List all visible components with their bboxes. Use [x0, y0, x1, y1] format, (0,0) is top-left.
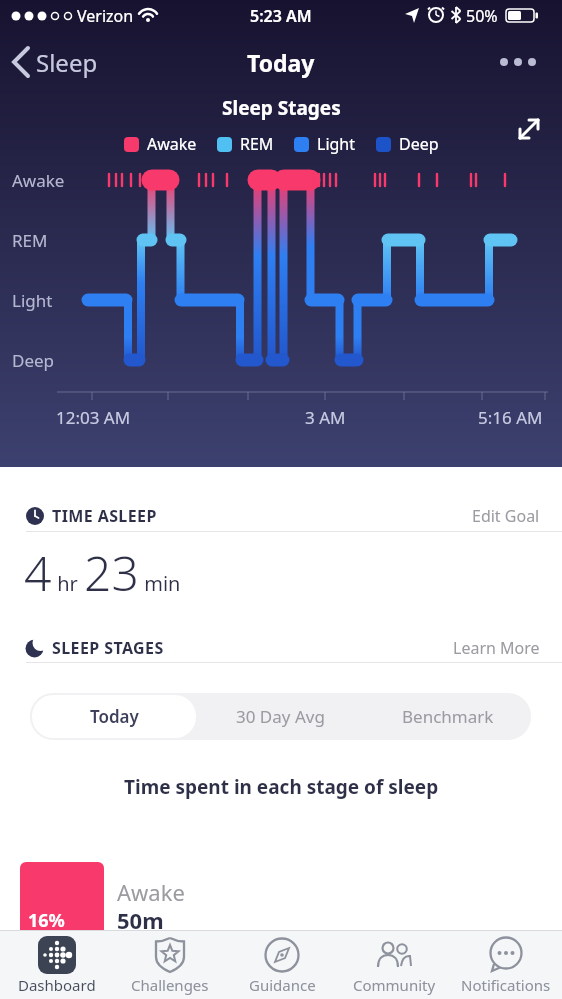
staticText: 5:23 AM — [250, 5, 312, 27]
staticText: Today — [90, 705, 139, 728]
staticText: REM — [12, 229, 48, 252]
staticText: Sleep Stages — [222, 95, 341, 121]
staticText: Guidance — [249, 975, 316, 995]
staticText: Verizon — [77, 5, 134, 27]
staticText: Light — [317, 133, 356, 155]
staticText: 3 AM — [305, 406, 346, 429]
staticText: Deep — [399, 133, 439, 155]
button[interactable]: Community — [338, 930, 450, 999]
staticText: 23 — [84, 540, 139, 596]
button[interactable]: Today — [32, 695, 196, 738]
button[interactable]: Learn More — [400, 635, 540, 661]
staticText: Dashboard — [18, 975, 96, 995]
staticText: Sleep — [36, 46, 98, 79]
staticText: Awake — [12, 169, 65, 192]
staticText: Light — [12, 289, 53, 312]
staticText: Benchmark — [402, 705, 494, 728]
staticText: Challenges — [131, 975, 209, 995]
staticText: hr — [52, 570, 84, 597]
button[interactable] — [512, 112, 552, 148]
staticText: 50m — [117, 905, 164, 933]
button[interactable] — [490, 44, 550, 80]
staticText: 12:03 AM — [56, 406, 131, 429]
button[interactable]: Challenges — [113, 930, 226, 999]
button[interactable]: Guidance — [226, 930, 338, 999]
staticText: 5:16 AM — [478, 406, 543, 429]
staticText: Notifications — [461, 975, 551, 995]
staticText: Deep — [12, 349, 55, 372]
button[interactable]: Sleep — [6, 42, 116, 82]
button[interactable]: Edit Goal — [420, 503, 540, 529]
staticText: 30 Day Avg — [236, 705, 325, 728]
staticText: TIME ASLEEP — [52, 505, 157, 527]
staticText: Awake — [117, 877, 185, 905]
button[interactable]: 30 Day Avg — [197, 693, 364, 740]
staticText: 4 — [24, 540, 52, 596]
staticText: Time spent in each stage of sleep — [124, 774, 439, 800]
staticText: min — [139, 570, 181, 597]
staticText: 50% — [466, 5, 498, 27]
button[interactable]: Dashboard — [0, 930, 113, 999]
staticText: Community — [353, 975, 436, 995]
staticText: Awake — [147, 133, 197, 155]
button[interactable]: Benchmark — [364, 693, 531, 740]
staticText: REM — [240, 133, 274, 155]
staticText: SLEEP STAGES — [52, 637, 164, 659]
staticText: Edit Goal — [472, 505, 540, 527]
staticText: Today — [247, 47, 315, 78]
button[interactable]: Notifications — [450, 930, 562, 999]
staticText: 16% — [28, 908, 65, 930]
staticText: Learn More — [453, 637, 540, 659]
